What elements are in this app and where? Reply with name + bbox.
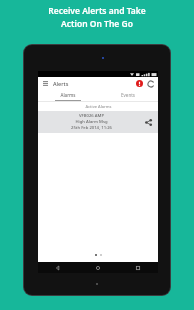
- staticText: VFB026 AMP: [79, 113, 104, 119]
- button[interactable]: Events: [98, 90, 158, 100]
- staticText: 25th Feb 2014, 11:26: [71, 125, 112, 131]
- button[interactable]: Back: [38, 262, 78, 273]
- button[interactable]: Recent apps: [118, 262, 158, 273]
- button[interactable]: Share alarm: [138, 111, 158, 133]
- staticText: High Alarm Msg: [75, 119, 108, 125]
- button[interactable]: Open navigation menu: [41, 79, 50, 88]
- button[interactable]: Home: [78, 262, 118, 273]
- staticText: Action On The Go: [61, 18, 133, 30]
- button[interactable]: VFB026 AMP: [38, 111, 158, 133]
- staticText: Alarms: [60, 92, 76, 98]
- button[interactable]: Refresh: [146, 79, 155, 88]
- staticText: Alerts: [53, 80, 69, 87]
- button[interactable]: Alarms: [38, 90, 98, 100]
- staticText: Events: [121, 92, 135, 98]
- staticText: Receive Alerts and Take: [48, 5, 146, 17]
- staticText: Active Alarms: [85, 104, 112, 109]
- button[interactable]: Alerts: [135, 79, 144, 88]
